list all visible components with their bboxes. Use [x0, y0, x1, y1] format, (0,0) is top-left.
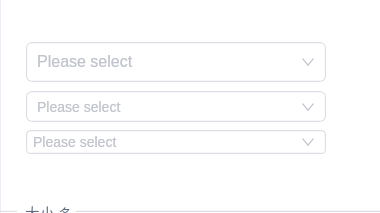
staticText: 多 — [58, 203, 73, 213]
staticText: 小 — [40, 202, 55, 213]
button[interactable]: Please select — [26, 130, 326, 154]
button[interactable]: Please select — [26, 42, 326, 82]
button[interactable]: Please select — [26, 91, 326, 122]
staticText: Please select — [37, 99, 121, 115]
staticText: Please select — [33, 134, 117, 150]
staticText: 大 — [25, 202, 40, 213]
staticText: Please select — [37, 53, 133, 71]
